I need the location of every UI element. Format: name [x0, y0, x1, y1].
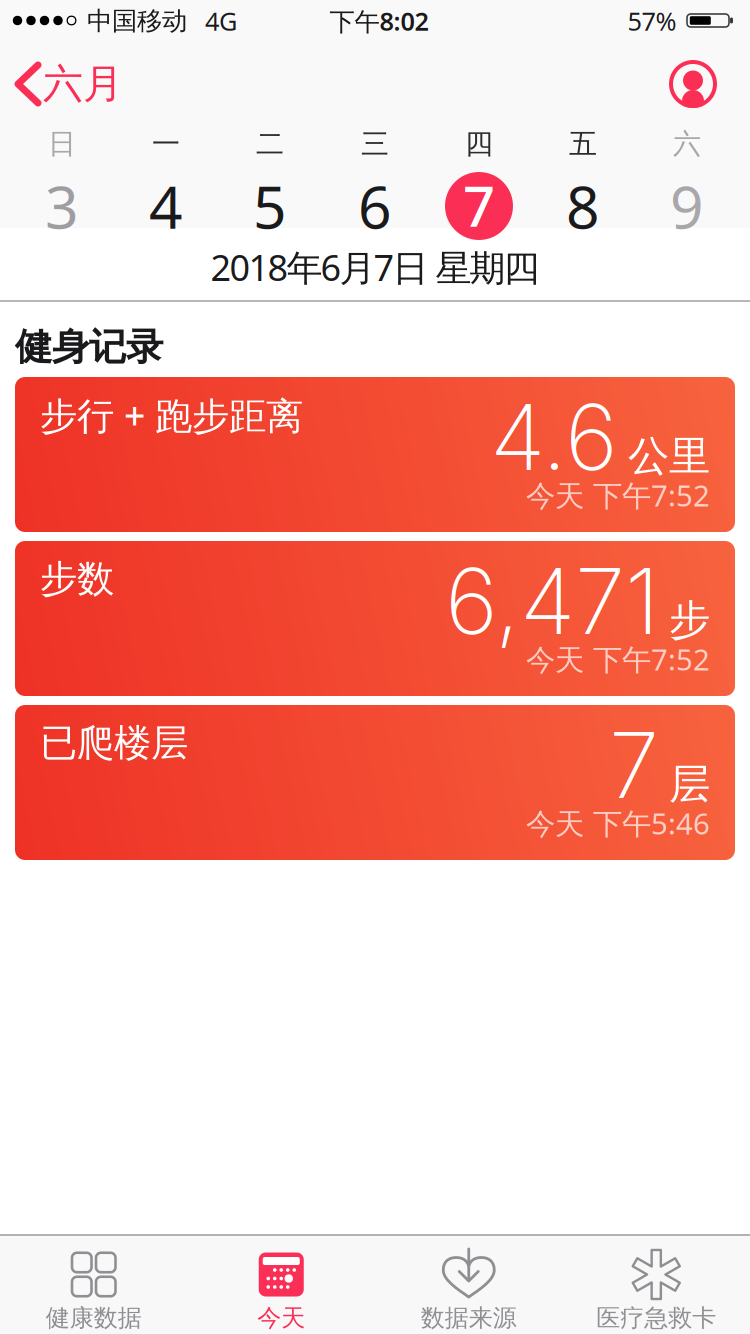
staticText: 今天: [257, 1303, 305, 1333]
staticText: 4G: [205, 4, 237, 38]
button[interactable]: 数据来源: [375, 1236, 562, 1334]
button[interactable]: 已爬楼层: [15, 705, 735, 860]
staticText: 四: [465, 127, 493, 161]
staticText: 步行 + 跑步距离: [40, 390, 303, 440]
staticText: 健康数据: [46, 1303, 142, 1333]
staticText: 层: [669, 759, 710, 810]
staticText: 医疗急救卡: [596, 1303, 716, 1333]
staticText: 数据来源: [421, 1303, 517, 1333]
staticText: 7: [609, 710, 659, 820]
staticText: 步数: [40, 556, 114, 602]
staticText: 今天 下午5:46: [526, 803, 710, 842]
button[interactable]: 步数: [15, 541, 735, 696]
button[interactable]: 9: [652, 172, 722, 240]
staticText: 二: [256, 127, 284, 161]
button[interactable]: 健康数据: [0, 1236, 187, 1334]
staticText: 6,471: [445, 546, 659, 656]
staticText: 五: [569, 127, 597, 161]
staticText: 一: [152, 127, 180, 161]
staticText: 中国移动: [87, 5, 187, 36]
staticText: 9: [670, 167, 704, 245]
staticText: 7: [463, 168, 495, 242]
staticText: 6: [358, 167, 392, 245]
staticText: 4.6: [490, 382, 618, 492]
staticText: 今天 下午7:52: [526, 639, 710, 678]
button[interactable]: 3: [27, 172, 97, 240]
button[interactable]: 六月: [14, 62, 134, 106]
staticText: 公里: [628, 431, 710, 482]
staticText: 三: [361, 127, 389, 161]
button[interactable]: 医疗急救卡: [562, 1236, 750, 1334]
staticText: 六月: [43, 59, 123, 108]
button[interactable]: [669, 60, 717, 108]
button[interactable]: 今天: [187, 1236, 375, 1334]
staticText: 日: [48, 127, 76, 161]
button[interactable]: 5: [235, 172, 305, 240]
staticText: 步: [669, 595, 710, 646]
staticText: 健身记录: [15, 324, 163, 370]
staticText: 57%: [627, 4, 676, 38]
staticText: 2018年6月7日 星期四: [210, 243, 539, 291]
staticText: 今天 下午7:52: [526, 475, 710, 514]
button[interactable]: 4: [131, 172, 201, 240]
staticText: 8: [566, 167, 600, 245]
staticText: 六: [673, 127, 701, 161]
staticText: 已爬楼层: [40, 720, 188, 766]
staticText: 3: [45, 167, 79, 245]
button[interactable]: 6: [340, 172, 410, 240]
staticText: 5: [253, 167, 287, 245]
button[interactable]: 7: [445, 172, 513, 240]
staticText: 下午8:02: [329, 4, 428, 38]
staticText: 4: [149, 167, 183, 245]
button[interactable]: 步行 + 跑步距离: [15, 377, 735, 532]
button[interactable]: 8: [548, 172, 618, 240]
